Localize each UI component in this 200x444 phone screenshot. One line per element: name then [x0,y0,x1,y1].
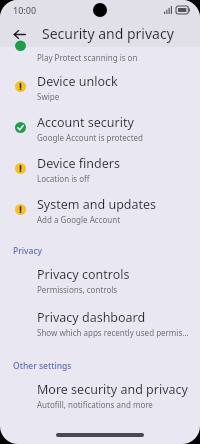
staticText: System and updates [37,196,157,213]
button[interactable]: Privacy dashboard [0,297,200,340]
button[interactable]: Account security [0,104,200,145]
staticText: Show which apps recently used permission… [37,327,192,338]
staticText: Permissions, controls [37,284,118,295]
button[interactable]: Back [6,21,32,47]
staticText: Privacy dashboard [37,309,146,326]
staticText: Device unlock [37,73,118,90]
staticText: Autofill, notifications and more [37,399,153,410]
button[interactable]: System and updates [0,186,200,227]
button[interactable]: Device finders [0,145,200,186]
staticText: Privacy controls [37,266,130,283]
staticText: More security and privacy [37,381,188,398]
button[interactable]: Play Protect scanning is on [0,47,200,64]
staticText: Swipe [37,91,60,102]
staticText: Privacy [13,245,43,257]
staticText: Add a Google Account [37,214,121,225]
button[interactable]: Device unlock [0,64,200,104]
button[interactable]: More security and privacy [0,373,200,412]
staticText: Play Protect scanning is on [37,52,138,63]
staticText: Google Account is protected [37,132,144,143]
button[interactable]: Privacy controls [0,258,200,297]
staticText: Security and privacy [42,24,174,43]
staticText: Location is off [37,173,90,184]
staticText: 10:00 [13,4,37,16]
staticText: Account security [37,114,134,131]
staticText: Other settings [13,360,72,372]
staticText: Device finders [37,155,120,172]
